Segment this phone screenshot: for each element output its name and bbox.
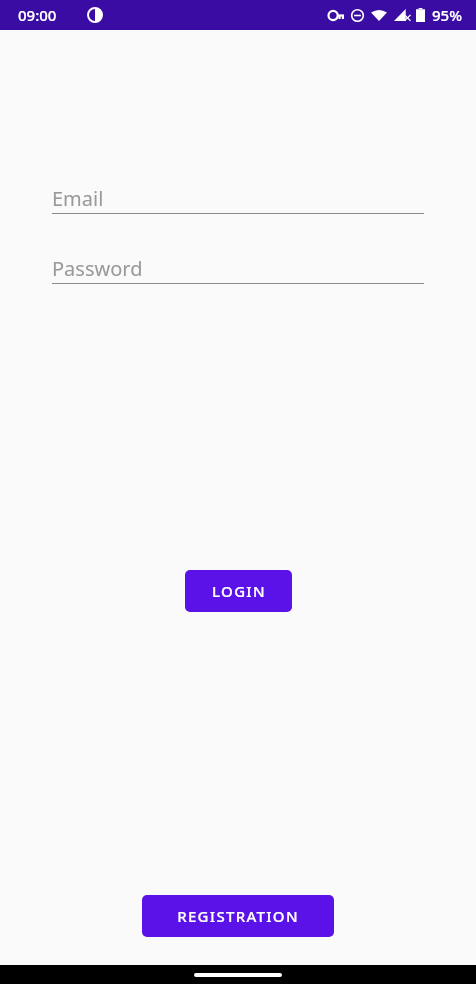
button[interactable]: Password bbox=[52, 252, 424, 284]
button[interactable]: REGISTRATION bbox=[142, 895, 334, 937]
staticText: Email bbox=[52, 185, 104, 212]
staticText: 95% bbox=[432, 5, 462, 25]
staticText: LOGIN bbox=[212, 581, 266, 601]
staticText: 09:00 bbox=[18, 5, 57, 25]
button[interactable]: Email bbox=[52, 182, 424, 214]
staticText: Password bbox=[52, 255, 143, 282]
staticText: REGISTRATION bbox=[177, 906, 299, 926]
button[interactable]: LOGIN bbox=[185, 570, 292, 612]
